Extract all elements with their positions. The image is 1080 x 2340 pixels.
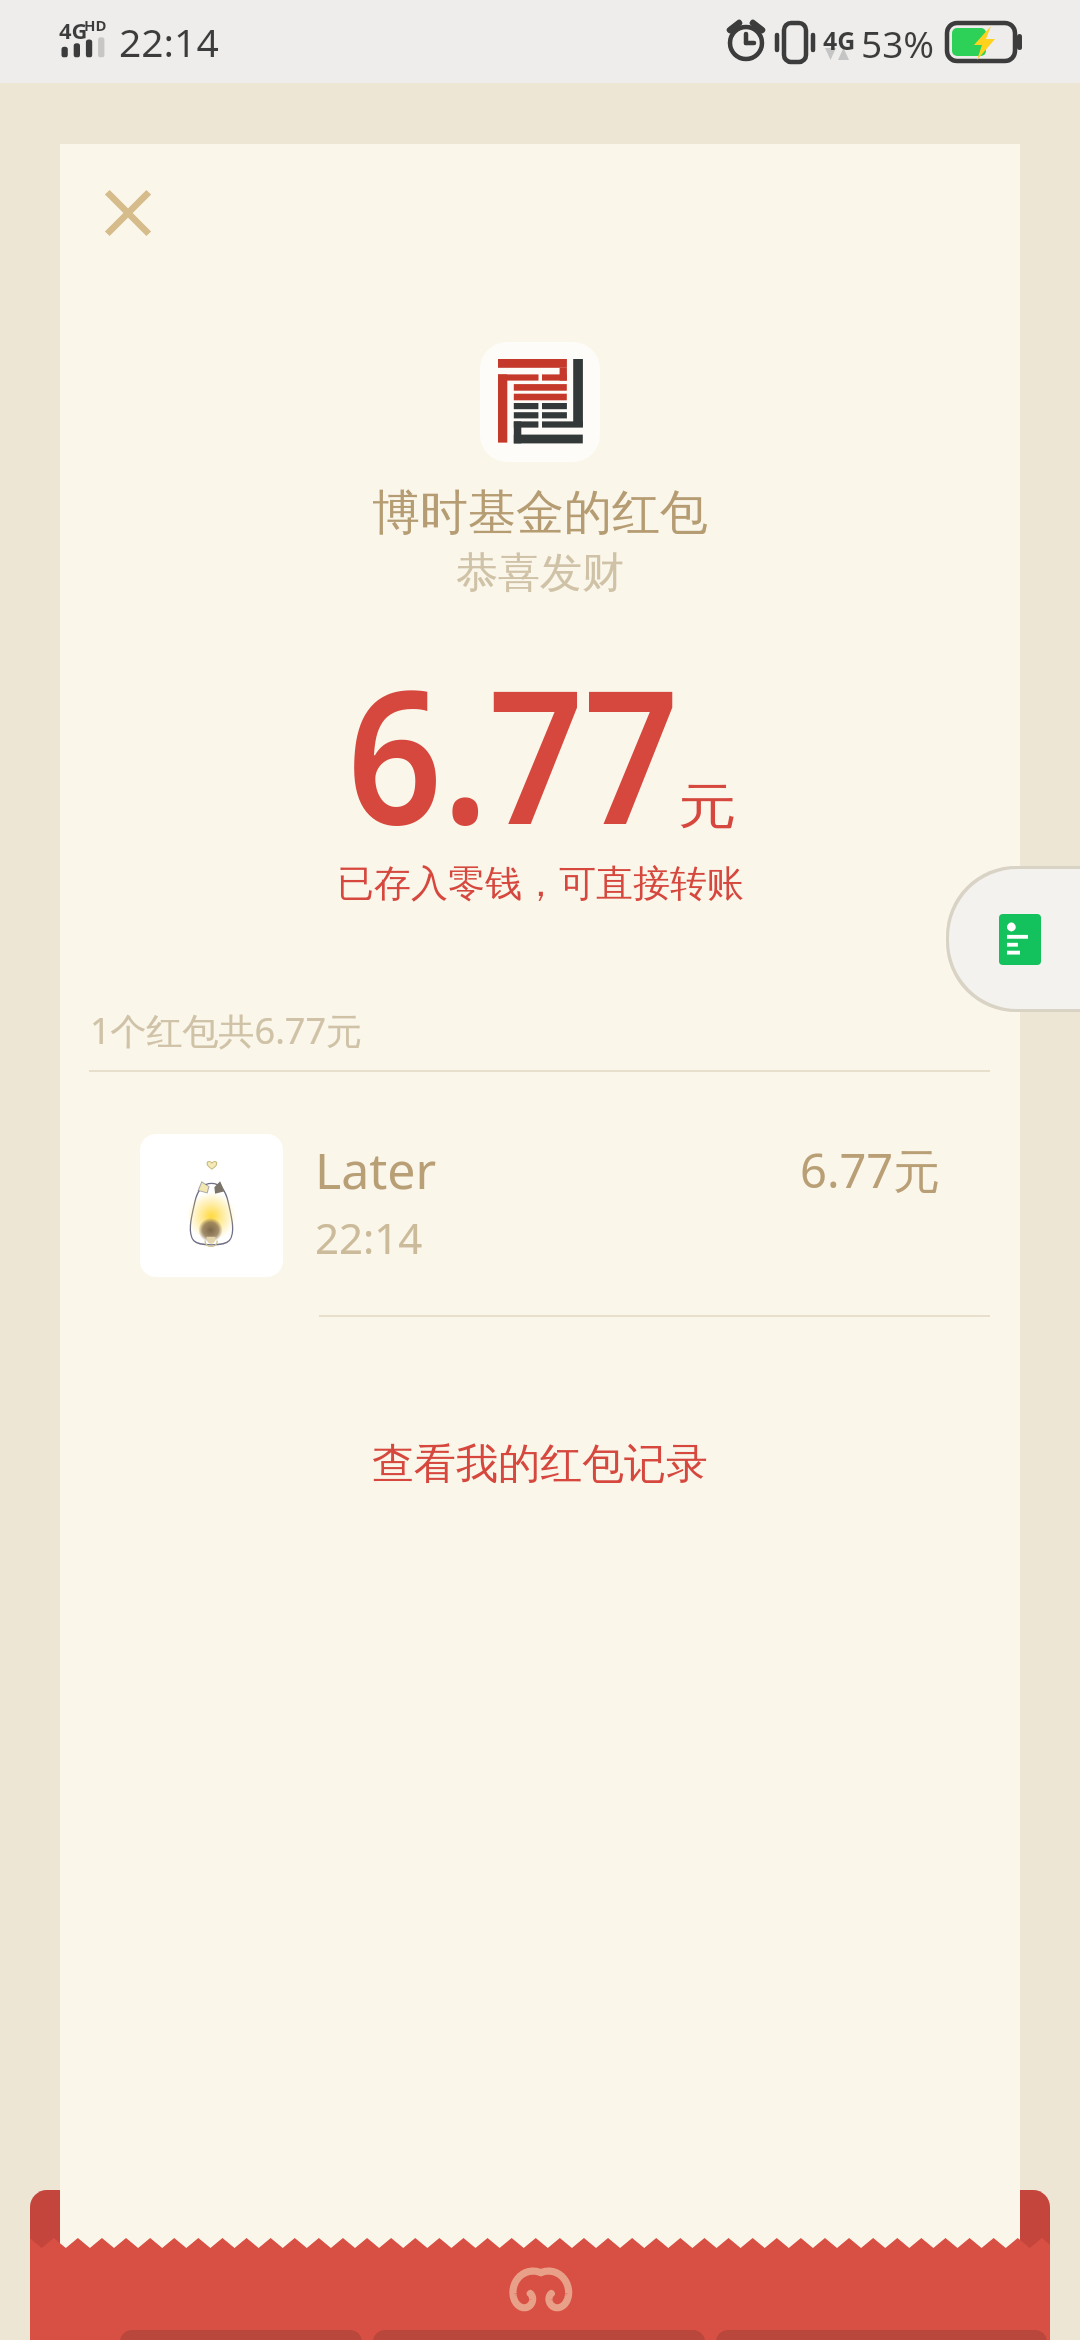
staticText: 1个红包共6.77元 (90, 1006, 363, 1055)
staticText: 4G (823, 23, 856, 57)
staticText: 博时基金的红包 (372, 483, 708, 543)
staticText: 查看我的红包记录 (372, 1438, 708, 1491)
staticText: 已存入零钱，可直接转账 (337, 860, 744, 907)
staticText: 53% (861, 18, 935, 68)
button[interactable]: Later (89, 1106, 990, 1314)
staticText: 恭喜发财 (456, 547, 624, 600)
staticText: Later (315, 1136, 437, 1204)
button[interactable]: Bill form (949, 869, 1080, 1009)
button[interactable]: Close (82, 166, 174, 258)
staticText: 4G (59, 15, 88, 45)
button[interactable]: 查看我的红包记录 (322, 1418, 758, 1511)
staticText: 22:14 (315, 1209, 423, 1266)
staticText: 元 (678, 776, 737, 837)
staticText: 6.77 (347, 627, 679, 878)
staticText: 6.77元 (800, 1138, 941, 1202)
staticText: HD (84, 15, 107, 35)
staticText: 22:14 (119, 15, 219, 68)
